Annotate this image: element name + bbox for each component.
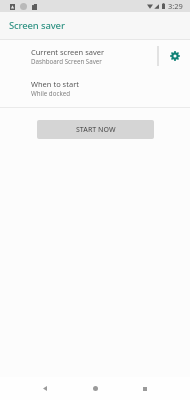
button[interactable]: Back bbox=[20, 377, 70, 400]
staticText: START NOW bbox=[76, 125, 116, 135]
staticText: Current screen saver bbox=[31, 47, 105, 57]
staticText: While docked bbox=[31, 89, 70, 97]
button[interactable]: Current screen saver bbox=[0, 40, 190, 71]
button[interactable]: START NOW bbox=[37, 120, 154, 139]
button[interactable]: Recent apps bbox=[120, 377, 170, 400]
button[interactable]: Home bbox=[70, 377, 120, 400]
staticText: Dashboard Screen Saver bbox=[31, 57, 102, 65]
button[interactable]: When to start bbox=[0, 71, 190, 104]
staticText: When to start bbox=[31, 79, 79, 89]
staticText: Screen saver bbox=[9, 19, 65, 32]
button[interactable]: Screen saver settings bbox=[159, 40, 190, 71]
staticText: 3:29 bbox=[168, 1, 183, 11]
